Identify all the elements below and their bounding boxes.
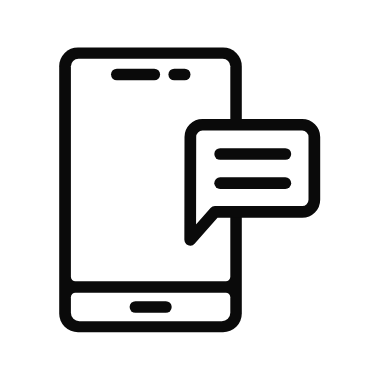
button[interactable]: Mobile chat message xyxy=(0,0,380,380)
